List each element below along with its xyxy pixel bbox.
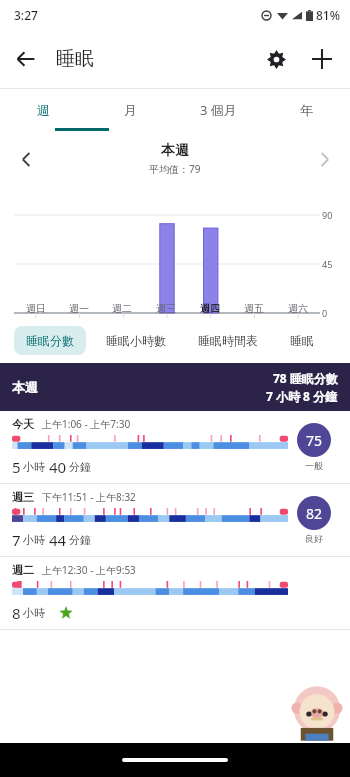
staticText: 0	[322, 307, 328, 317]
button[interactable]: 3 個月	[174, 89, 262, 131]
staticText: 良好	[305, 533, 323, 544]
staticText: 分鐘	[69, 533, 91, 547]
button[interactable]: Next week	[306, 141, 342, 177]
staticText: 睡眠	[290, 333, 314, 348]
staticText: 下午11:51 - 上午8:32	[42, 490, 136, 504]
button[interactable]: Settings	[256, 39, 296, 79]
staticText: 睡眠分數	[26, 333, 74, 348]
button[interactable]: 睡眠小時數	[94, 326, 178, 355]
staticText: 週三	[156, 302, 176, 315]
staticText: 平均值：79	[149, 162, 201, 176]
staticText: 5	[12, 457, 21, 477]
staticText: 分鐘	[69, 460, 91, 474]
staticText: 本週	[12, 379, 38, 395]
staticText: 小時	[23, 460, 45, 474]
button[interactable]: 週二	[0, 557, 350, 629]
button[interactable]: 睡眠分數	[14, 326, 86, 355]
staticText: 82	[306, 504, 323, 523]
staticText: 44	[49, 530, 67, 550]
staticText: 睡眠小時數	[106, 333, 166, 348]
staticText: 週六	[288, 302, 308, 315]
staticText: 週三	[12, 490, 34, 504]
button[interactable]: 月	[87, 89, 174, 131]
staticText: 週日	[26, 302, 46, 315]
staticText: 年	[300, 102, 313, 118]
staticText: 一般	[305, 460, 323, 471]
staticText: 今天	[12, 417, 34, 431]
staticText: 月	[124, 102, 137, 118]
staticText: 週	[37, 102, 50, 118]
staticText: 小時	[23, 606, 45, 620]
staticText: 45	[322, 258, 333, 270]
staticText: 90	[322, 209, 333, 221]
button[interactable]: 週	[0, 89, 87, 131]
staticText: 睡眠時間表	[198, 333, 258, 348]
staticText: 週二	[112, 302, 132, 315]
button[interactable]: 睡眠時間表	[186, 326, 270, 355]
staticText: 上午12:30 - 上午9:53	[42, 563, 136, 577]
staticText: 7 小時 8 分鐘	[266, 388, 338, 404]
staticText: 週四	[200, 302, 220, 315]
staticText: 81%	[316, 7, 340, 23]
button[interactable]: Add	[302, 39, 342, 79]
staticText: 75	[306, 431, 323, 450]
staticText: 40	[49, 457, 67, 477]
staticText: 本週	[161, 142, 189, 160]
button[interactable]: 年	[262, 89, 350, 131]
staticText: 78 睡眠分數	[273, 370, 338, 386]
staticText: 上午1:06 - 上午7:30	[42, 417, 131, 431]
staticText: 3:27	[14, 7, 38, 23]
button[interactable]: 睡眠	[278, 326, 326, 355]
staticText: 週一	[69, 302, 89, 315]
button[interactable]: 今天	[0, 411, 350, 483]
staticText: 8	[12, 603, 21, 623]
button[interactable]: Previous week	[8, 141, 44, 177]
staticText: 7	[12, 530, 21, 550]
button[interactable]: Back	[6, 39, 46, 79]
staticText: 睡眠	[56, 47, 94, 71]
staticText: 週二	[12, 563, 34, 577]
staticText: 週五	[244, 302, 264, 315]
staticText: 小時	[23, 533, 45, 547]
button[interactable]: 週三	[0, 484, 350, 556]
staticText: 3 個月	[200, 101, 237, 119]
